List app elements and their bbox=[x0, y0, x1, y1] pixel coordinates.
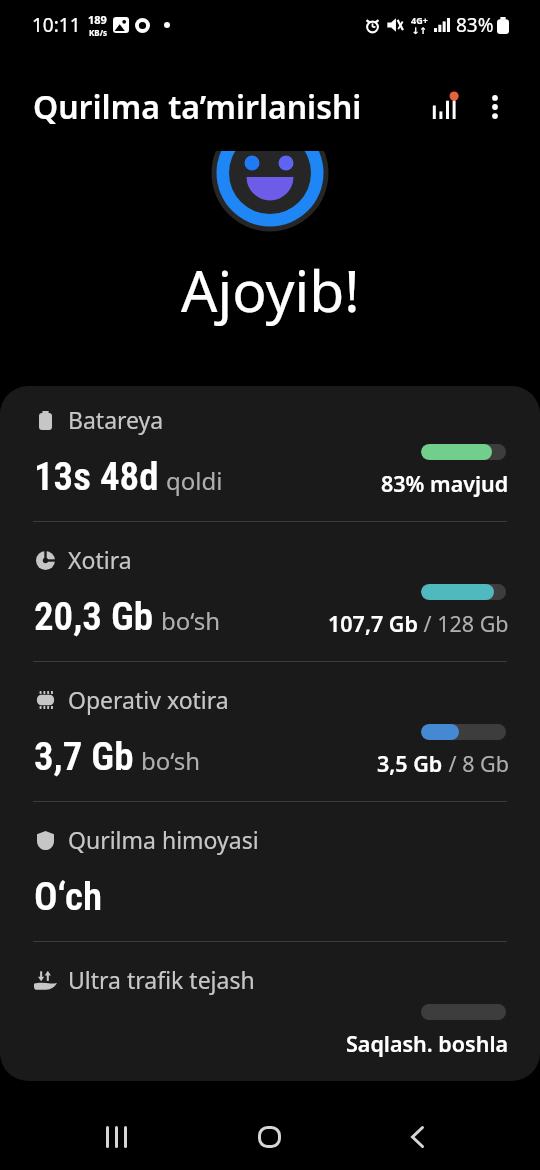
staticText: Qurilma himoyasi bbox=[68, 824, 259, 855]
staticText: 4G+ bbox=[411, 14, 428, 26]
staticText: Batareya bbox=[68, 404, 164, 435]
button[interactable]: Back bbox=[388, 1107, 447, 1166]
staticText: / 8 Gb bbox=[443, 749, 509, 778]
staticText: 3,7 Gb bbox=[34, 734, 134, 780]
staticText: 13s 48d bbox=[34, 454, 159, 500]
staticText: Qurilma ta’mirlanishi bbox=[33, 85, 362, 129]
staticText: 83% bbox=[456, 12, 494, 38]
staticText: 3,5 Gb bbox=[377, 749, 443, 778]
staticText: bo‘sh bbox=[161, 604, 221, 637]
staticText: O‘ch bbox=[34, 874, 103, 920]
button[interactable] bbox=[0, 802, 540, 942]
staticText: bo‘sh bbox=[141, 744, 201, 777]
button[interactable] bbox=[0, 382, 540, 522]
button[interactable] bbox=[0, 942, 540, 1082]
button[interactable]: More options bbox=[466, 79, 522, 135]
staticText: Operativ xotira bbox=[68, 684, 229, 715]
staticText: qoldi bbox=[166, 464, 223, 497]
staticText: 83% mavjud bbox=[381, 469, 509, 498]
staticText: 10:11 bbox=[32, 12, 81, 38]
staticText: Xotira bbox=[68, 544, 132, 575]
button[interactable]: Statistics bbox=[416, 80, 472, 136]
staticText: Saqlash. boshla bbox=[346, 1029, 509, 1058]
staticText: KB/s bbox=[89, 27, 107, 38]
button[interactable]: Home bbox=[240, 1107, 299, 1166]
staticText: / 128 Gb bbox=[418, 609, 509, 638]
staticText: Ultra trafik tejash bbox=[68, 964, 255, 995]
button[interactable] bbox=[0, 662, 540, 802]
staticText: ↓↑ bbox=[412, 26, 428, 36]
staticText: 189 bbox=[88, 12, 107, 27]
staticText: Ajoyib! bbox=[181, 251, 360, 329]
staticText: 20,3 Gb bbox=[34, 594, 154, 640]
button[interactable]: Recent apps bbox=[87, 1107, 146, 1166]
button[interactable] bbox=[0, 522, 540, 662]
staticText: 107,7 Gb bbox=[328, 609, 418, 638]
